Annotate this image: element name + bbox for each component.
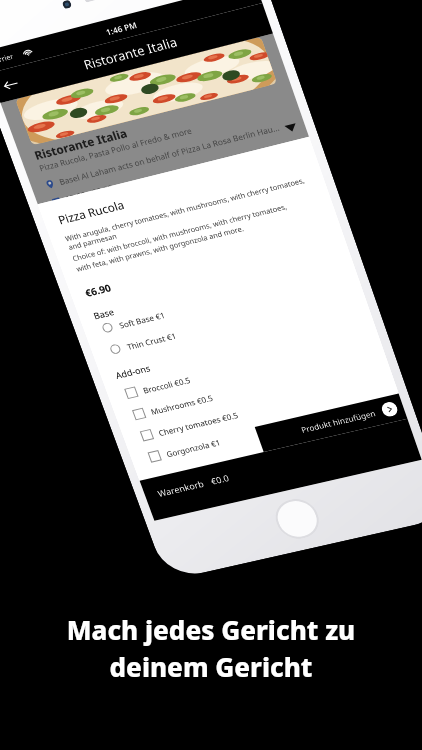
staticText: carrier xyxy=(0,52,15,67)
button[interactable]: Back xyxy=(0,65,31,103)
staticText: Pizza Rucola xyxy=(56,197,127,228)
staticText: 12:00 - 23:00 xyxy=(64,182,115,204)
staticText: Add-ons xyxy=(113,361,152,381)
staticText: Thin Crust €1 xyxy=(125,330,178,352)
staticText: Mushrooms €0.5 xyxy=(149,392,215,417)
button[interactable]: Soft Base €1 xyxy=(95,260,348,340)
button[interactable]: Gorgonzola €1 xyxy=(142,391,394,468)
button[interactable]: Thin Crust €1 xyxy=(103,282,356,361)
staticText: Broccoli €0.5 xyxy=(141,374,192,396)
staticText: Gorgonzola €1 xyxy=(165,437,222,459)
staticText: Produkt hinzufügen xyxy=(299,407,377,435)
staticText: Ristorante Italia xyxy=(0,10,270,96)
button[interactable]: Warenkorb xyxy=(140,419,422,521)
staticText: Cherry tomatoes €0.5 xyxy=(157,409,239,438)
staticText: Ristorante Italia xyxy=(32,125,130,164)
staticText: €6.90 xyxy=(83,281,113,300)
staticText: Soft Base €1 xyxy=(117,309,167,330)
staticText: Base xyxy=(92,305,116,321)
button[interactable]: Cherry tomatoes €0.5 xyxy=(135,370,387,447)
staticText: €0.0 xyxy=(209,472,230,487)
staticText: 1:46 PM xyxy=(0,0,261,68)
button[interactable]: Home xyxy=(270,495,325,543)
button[interactable]: Broccoli €0.5 xyxy=(119,326,372,405)
button[interactable]: Mushrooms €0.5 xyxy=(127,348,379,426)
staticText: Pizza Rucola, Pasta Pollo al Fredo & mor… xyxy=(37,125,193,173)
staticText: Choice of: with broccoli, with mushrooms… xyxy=(71,201,292,274)
staticText: With arugula, cherry tomatoes, with mush… xyxy=(64,171,323,252)
staticText: Basel Al Laham acts on behalf of Pizza L… xyxy=(57,121,281,187)
staticText: Warenkorb xyxy=(156,477,205,499)
staticText: Mach jedes Gericht zu deinem Gericht xyxy=(0,612,422,685)
button[interactable]: Produkt hinzufügen xyxy=(255,393,407,452)
